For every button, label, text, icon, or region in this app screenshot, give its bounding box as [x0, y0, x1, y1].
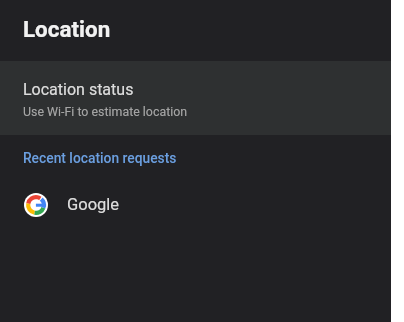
button[interactable]: Location	[0, 0, 391, 61]
button[interactable]: Recent location requests	[0, 146, 200, 170]
button[interactable]: Location status	[0, 61, 391, 135]
staticText: Recent location requests	[23, 150, 177, 166]
other: Google app icon	[24, 193, 48, 217]
staticText: Location	[23, 16, 111, 42]
staticText: Use Wi-Fi to estimate location	[23, 104, 188, 119]
staticText: Location status	[23, 80, 134, 99]
button[interactable]: Google app icon	[0, 188, 391, 221]
staticText: Google	[67, 195, 120, 214]
